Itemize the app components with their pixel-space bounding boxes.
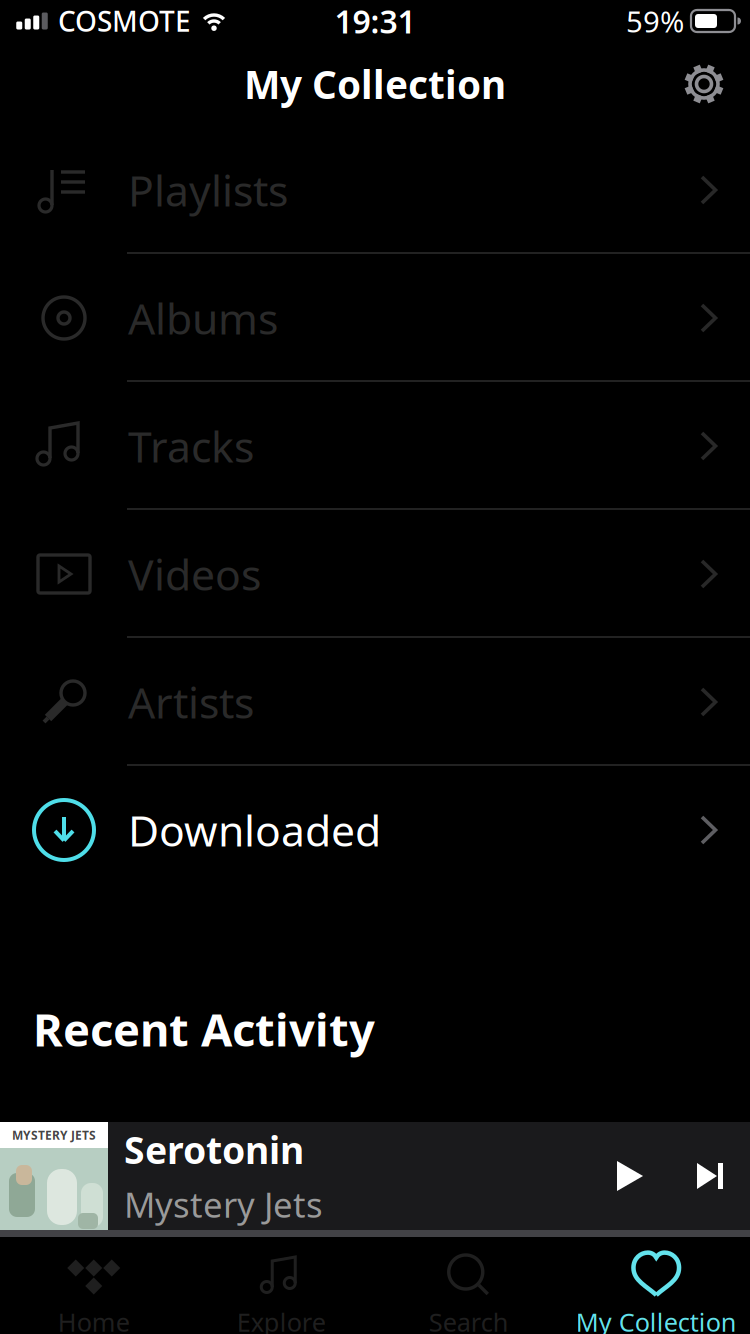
- staticText: Serotonin: [124, 1125, 304, 1174]
- staticText: MYSTERY JETS: [12, 1127, 96, 1143]
- staticText: Explore: [237, 1305, 326, 1334]
- button[interactable]: Settings: [682, 62, 726, 106]
- button[interactable]: Search: [375, 1237, 562, 1334]
- button[interactable]: Videos: [0, 510, 750, 638]
- staticText: Videos: [128, 546, 261, 602]
- button[interactable]: Playlists: [0, 126, 750, 254]
- staticText: Playlists: [128, 162, 288, 218]
- staticText: Tracks: [128, 418, 254, 474]
- button[interactable]: Home: [0, 1237, 187, 1334]
- button[interactable]: Explore: [187, 1237, 375, 1334]
- button[interactable]: Now playing: Serotonin by Mystery Jets: [0, 1122, 323, 1230]
- button[interactable]: Next track: [697, 1163, 723, 1189]
- button[interactable]: Albums: [0, 254, 750, 382]
- staticText: Recent Activity: [33, 999, 375, 1059]
- staticText: 59%: [626, 1, 684, 40]
- staticText: My Collection: [244, 58, 506, 110]
- button[interactable]: Downloaded: [0, 766, 750, 894]
- staticText: Mystery Jets: [124, 1181, 323, 1227]
- staticText: Search: [429, 1305, 509, 1334]
- staticText: Downloaded: [128, 802, 381, 858]
- staticText: Artists: [128, 674, 254, 730]
- button[interactable]: My Collection: [562, 1237, 750, 1334]
- button[interactable]: Tracks: [0, 382, 750, 510]
- staticText: COSMOTE: [58, 2, 191, 40]
- staticText: My Collection: [576, 1305, 737, 1334]
- staticText: 19:31: [334, 0, 415, 42]
- staticText: Albums: [128, 290, 278, 346]
- button[interactable]: Play: [615, 1161, 645, 1191]
- button[interactable]: Artists: [0, 638, 750, 766]
- staticText: Home: [58, 1305, 130, 1334]
